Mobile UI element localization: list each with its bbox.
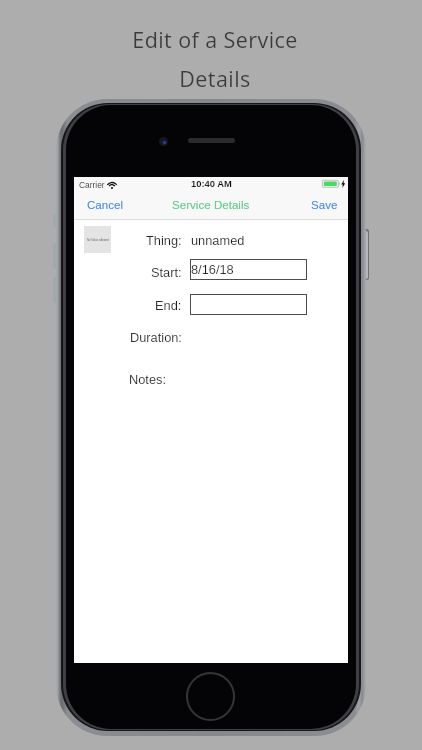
button[interactable]: Home (186, 672, 235, 721)
staticText: No Value allowed (87, 238, 109, 241)
staticText: Edit of a Service (132, 25, 298, 54)
staticText: Details (179, 64, 251, 93)
button[interactable]: Save (307, 194, 342, 215)
button[interactable]: Cancel (83, 194, 128, 215)
staticText: unnamed (191, 233, 245, 247)
staticText: 10:40 AM (191, 178, 232, 189)
staticText: Notes: (129, 372, 166, 386)
staticText: Duration: (130, 330, 182, 344)
staticText: 8/16/18 (191, 262, 234, 276)
staticText: Start: (151, 265, 182, 279)
staticText: Service Details (172, 198, 250, 211)
button[interactable] (190, 294, 307, 315)
staticText: End: (155, 298, 182, 312)
staticText: Save (311, 198, 338, 211)
staticText: Carrier (79, 180, 105, 189)
staticText: Thing: (146, 233, 182, 247)
button[interactable]: 8/16/18 (190, 259, 307, 280)
staticText: Cancel (87, 198, 124, 211)
